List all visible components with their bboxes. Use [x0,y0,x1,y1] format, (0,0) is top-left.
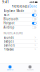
staticText: > [34,36,36,39]
staticText: Wi-Fi [3,13,9,17]
button[interactable]: General [0,64,20,72]
button[interactable]: Airdrop [2,25,38,29]
button[interactable]: Done [28,4,38,9]
staticText: Airdrop [3,26,14,29]
button[interactable]: Hotspot [2,21,38,25]
button[interactable]: Sounds [2,36,38,39]
staticText: > [34,48,36,51]
button[interactable]: Wi-Fi [2,13,38,17]
button[interactable]: Bluetooth [2,17,38,21]
staticText: > [34,44,36,47]
button[interactable]: Account [20,64,40,72]
staticText: Account [27,69,33,71]
button[interactable]: Previews [2,47,38,51]
staticText: Badges [3,40,13,43]
staticText: 9:41 [2,0,9,4]
staticText: NOTIFICATIONS [3,31,22,35]
button[interactable]: Badges [2,40,38,43]
staticText: Preferences [11,5,28,8]
staticText: General [7,69,13,71]
staticText: Previews [3,48,13,51]
staticText: Sounds [3,36,13,39]
staticText: > [34,40,36,43]
staticText: Done [29,5,37,8]
staticText: Airplane Mode [3,9,24,13]
button[interactable]: Banners [2,44,38,47]
button[interactable]: Airplane Mode [2,9,38,13]
staticText: Hotspot [3,21,14,25]
staticText: Banners [3,44,14,47]
staticText: Bluetooth [3,17,18,21]
